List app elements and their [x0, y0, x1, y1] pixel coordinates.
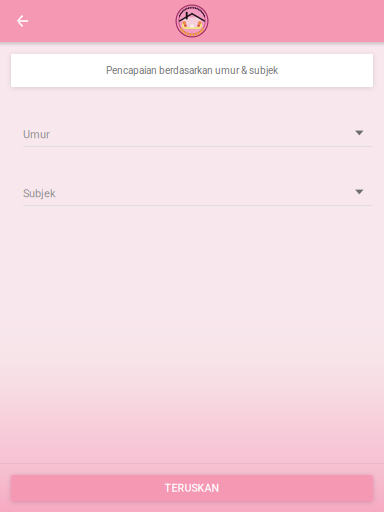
staticText: Subjek: [23, 187, 56, 200]
button[interactable]: Back: [5, 0, 39, 42]
staticText: Umur: [23, 128, 50, 141]
staticText: TERUSKAN: [164, 482, 219, 494]
button[interactable]: Umur: [23, 123, 373, 147]
button[interactable]: TERUSKAN: [11, 475, 373, 501]
staticText: Pencapaian berdasarkan umur & subjek: [106, 65, 278, 76]
button[interactable]: Subjek: [23, 182, 373, 206]
